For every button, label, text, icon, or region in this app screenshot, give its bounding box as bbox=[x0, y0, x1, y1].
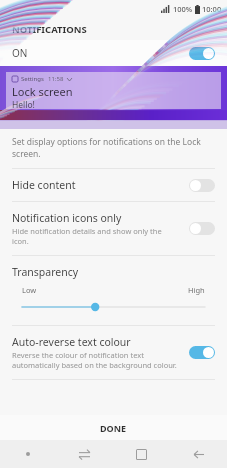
staticText: Settings bbox=[21, 75, 44, 83]
staticText: Transparency bbox=[12, 265, 79, 279]
staticText: ON bbox=[12, 46, 28, 60]
staticText: Hide content bbox=[12, 178, 76, 192]
staticText: Hide notification details and show only … bbox=[12, 226, 162, 246]
button[interactable]: ON bbox=[0, 40, 227, 66]
button[interactable]: Recent apps bbox=[56, 440, 113, 468]
staticText: Lock screen bbox=[12, 84, 73, 99]
button[interactable]: Menu bbox=[0, 440, 56, 468]
staticText: Notification icons only bbox=[12, 211, 122, 225]
staticText: 10:00 bbox=[202, 4, 222, 14]
staticText: 11:58 bbox=[48, 75, 64, 83]
button[interactable]: Transparency slider bbox=[0, 300, 227, 314]
button[interactable]: Home bbox=[113, 440, 170, 468]
button[interactable]: Settings bbox=[0, 66, 227, 129]
button[interactable]: Notification icons only bbox=[0, 202, 227, 255]
staticText: DONE bbox=[100, 422, 127, 434]
staticText: 100% bbox=[173, 4, 193, 14]
button[interactable]: Hide content bbox=[0, 169, 227, 201]
button[interactable]: DONE bbox=[0, 415, 227, 440]
staticText: Reverse the colour of notification text … bbox=[12, 350, 177, 370]
button[interactable]: Back bbox=[170, 440, 227, 468]
button[interactable]: Auto-reverse text colour bbox=[0, 326, 227, 379]
staticText: Low bbox=[22, 285, 37, 295]
staticText: Auto-reverse text colour bbox=[12, 335, 131, 349]
staticText: Set display options for notifications on… bbox=[12, 136, 201, 160]
staticText: High bbox=[188, 285, 205, 295]
staticText: NOTIFICATIONS bbox=[12, 23, 87, 36]
staticText: Hello! bbox=[12, 99, 35, 109]
